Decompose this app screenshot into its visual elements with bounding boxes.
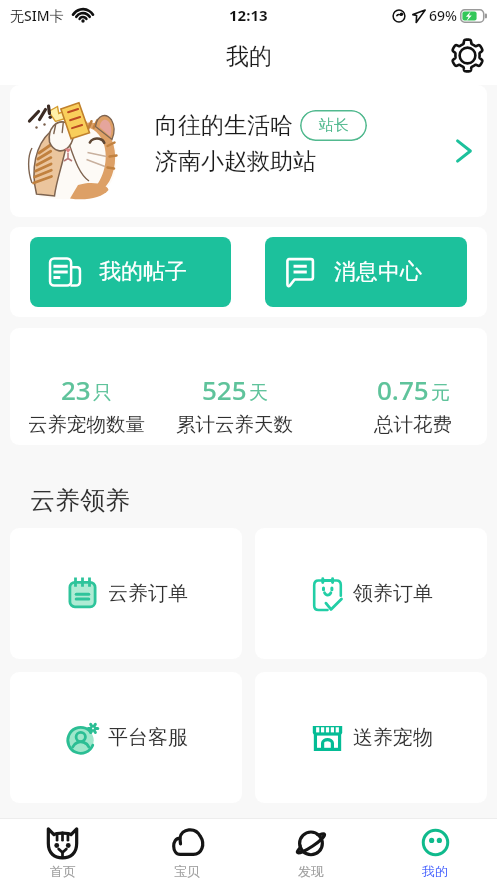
staticText: 宝贝	[174, 863, 200, 879]
staticText: 云养宠物数量	[28, 412, 145, 437]
staticText: 元	[431, 381, 450, 405]
staticText: 发现	[298, 863, 324, 879]
button[interactable]: 送养宠物	[255, 672, 487, 803]
button[interactable]: 宝贝	[125, 819, 249, 883]
button[interactable]: 首页	[0, 819, 125, 883]
staticText: 平台客服	[108, 725, 188, 750]
staticText: 69%	[429, 6, 457, 25]
staticText: 无SIM卡	[10, 6, 64, 25]
button[interactable]: 云养订单	[10, 528, 242, 659]
staticText: 0.75	[377, 372, 429, 407]
staticText: 济南小赵救助站	[155, 147, 316, 176]
staticText: 送养宠物	[353, 725, 433, 750]
button[interactable]: 23	[10, 328, 176, 445]
staticText: 我的	[422, 863, 448, 879]
button[interactable]: 向往的生活哈	[10, 85, 487, 217]
button[interactable]: 525	[144, 328, 324, 445]
staticText: 12:13	[229, 5, 268, 25]
button[interactable]: 0.75	[323, 328, 487, 445]
staticText: 总计花费	[374, 412, 452, 437]
button[interactable]: 消息中心	[265, 237, 467, 307]
staticText: 站长	[319, 116, 349, 135]
staticText: 只	[93, 381, 112, 405]
staticText: 我的帖子	[99, 258, 187, 286]
staticText: 累计云养天数	[176, 412, 293, 437]
button[interactable]: 我的	[373, 819, 497, 883]
button[interactable]: Settings	[449, 37, 486, 74]
staticText: 消息中心	[334, 258, 422, 286]
staticText: 首页	[50, 863, 76, 879]
button[interactable]: 领养订单	[255, 528, 487, 659]
button[interactable]: 平台客服	[10, 672, 242, 803]
staticText: 领养订单	[353, 581, 433, 606]
staticText: 525	[202, 372, 247, 407]
staticText: 向往的生活哈	[155, 111, 293, 140]
staticText: 天	[249, 381, 268, 405]
staticText: 云养领养	[30, 485, 130, 516]
staticText: 23	[61, 372, 91, 407]
button[interactable]: 发现	[249, 819, 373, 883]
staticText: 我的	[226, 42, 272, 71]
staticText: 云养订单	[108, 581, 188, 606]
button[interactable]: 我的帖子	[30, 237, 231, 307]
